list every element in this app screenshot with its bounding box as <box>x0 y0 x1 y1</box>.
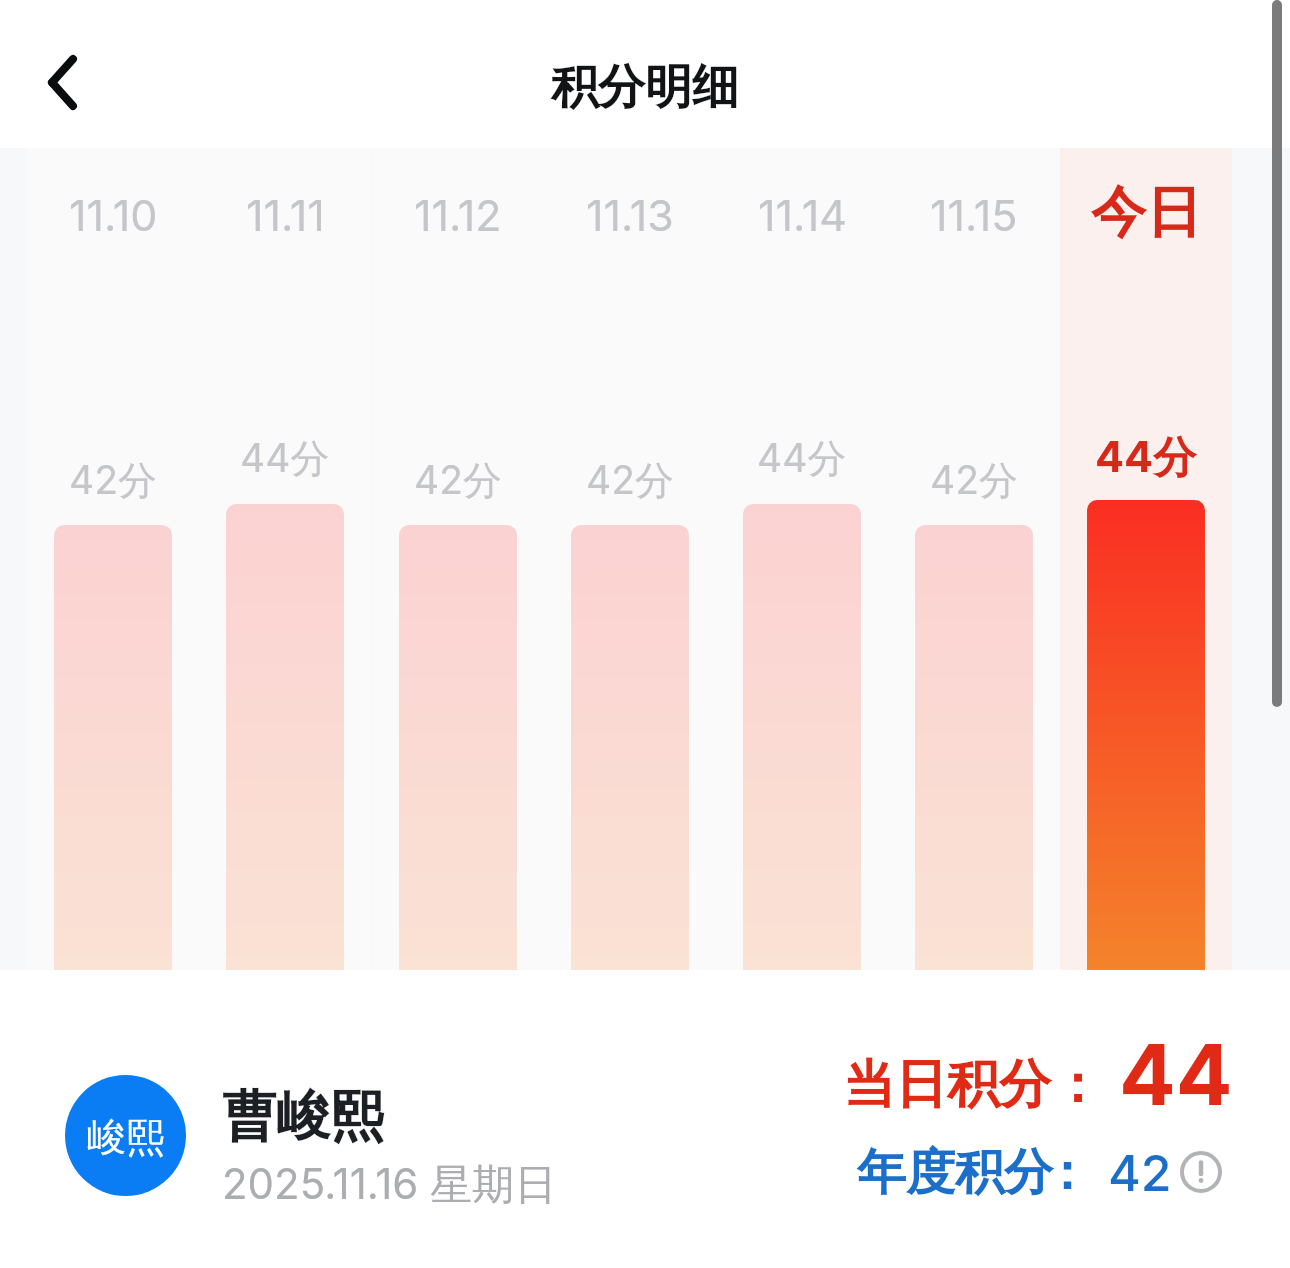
staticText: ： <box>1042 1142 1091 1204</box>
staticText: 11.14 <box>758 189 847 241</box>
button[interactable]: 年度积分 <box>857 1142 1214 1204</box>
button[interactable]: 11.15 <box>888 148 1060 970</box>
staticText: 42 <box>1108 1143 1172 1203</box>
staticText: 42分 <box>930 456 1018 505</box>
staticText: 44分 <box>757 434 847 483</box>
staticText: 2025.11.16 星期日 <box>222 1158 557 1211</box>
staticText: 今日 <box>1091 178 1201 247</box>
staticText: 11.15 <box>930 189 1018 241</box>
staticText: 11.11 <box>246 189 325 241</box>
staticText: 42分 <box>69 456 157 505</box>
staticText: 42分 <box>586 456 674 505</box>
button[interactable]: 11.11 <box>199 148 371 970</box>
staticText: 44分 <box>1095 430 1197 484</box>
staticText: 44分 <box>240 434 330 483</box>
button[interactable]: Back <box>28 45 98 115</box>
button[interactable]: 11.13 <box>544 148 716 970</box>
staticText: 当日积分： <box>843 1052 1103 1118</box>
staticText: 42分 <box>414 456 502 505</box>
button[interactable]: 11.12 <box>372 148 544 970</box>
staticText: 峻熙 <box>87 1113 165 1162</box>
staticText: 44 <box>1119 1024 1233 1126</box>
button[interactable]: 今日 <box>1060 148 1232 970</box>
staticText: 11.12 <box>414 189 502 241</box>
staticText: 11.13 <box>586 189 674 241</box>
staticText: 曹峻熙 <box>222 1083 384 1151</box>
staticText: 年度积分 <box>857 1142 1053 1204</box>
button[interactable]: 峻熙 <box>50 1065 570 1207</box>
staticText: 11.10 <box>69 189 158 241</box>
button[interactable]: Points info <box>1177 1148 1225 1196</box>
button[interactable]: 11.10 <box>27 148 199 970</box>
staticText: 积分明细 <box>551 58 739 117</box>
button[interactable]: 11.14 <box>716 148 888 970</box>
